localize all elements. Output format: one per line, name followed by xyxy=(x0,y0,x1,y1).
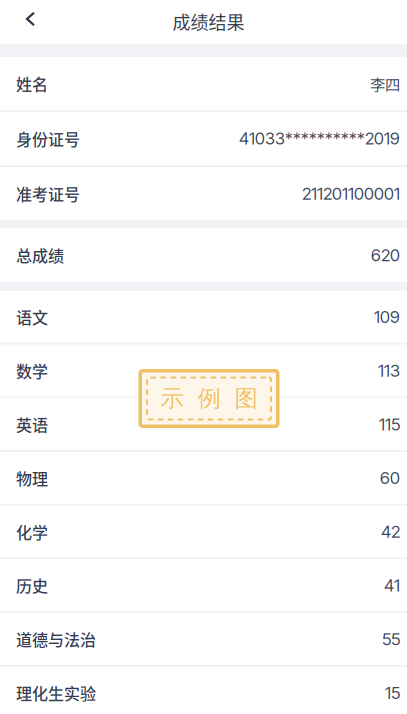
staticText: 化学 xyxy=(16,520,48,543)
staticText: 41 xyxy=(384,575,400,596)
button[interactable]: 数学 xyxy=(0,345,407,396)
button[interactable]: 英语 xyxy=(0,398,407,450)
staticText: 113 xyxy=(378,360,400,381)
staticText: 成绩结果 xyxy=(172,8,244,35)
button[interactable]: 道德与法治 xyxy=(0,613,407,665)
staticText: 60 xyxy=(380,468,400,488)
staticText: 数学 xyxy=(16,359,48,382)
button[interactable]: Back xyxy=(0,0,49,44)
staticText: 道德与法治 xyxy=(16,627,96,651)
staticText: 115 xyxy=(379,414,400,434)
button[interactable]: 历史 xyxy=(0,559,407,611)
staticText: 李四 xyxy=(370,72,400,95)
staticText: 211201100001 xyxy=(302,183,400,204)
staticText: 109 xyxy=(374,307,400,327)
button[interactable]: 总成绩 xyxy=(0,228,407,282)
button[interactable]: 姓名 xyxy=(0,57,407,110)
button[interactable]: 准考证号 xyxy=(0,167,407,220)
staticText: 42 xyxy=(381,521,400,542)
button[interactable]: 身份证号 xyxy=(0,112,407,165)
staticText: 41033**********2019 xyxy=(239,128,400,149)
button[interactable]: 理化生实验 xyxy=(0,667,407,714)
staticText: 55 xyxy=(382,629,400,649)
staticText: 物理 xyxy=(16,466,48,490)
staticText: 15 xyxy=(385,682,400,703)
staticText: 英语 xyxy=(16,413,48,436)
staticText: 身份证号 xyxy=(16,127,80,150)
staticText: 准考证号 xyxy=(16,182,80,205)
button[interactable]: 化学 xyxy=(0,506,407,557)
staticText: 语文 xyxy=(16,305,48,328)
staticText: 示 例 图 xyxy=(160,384,257,413)
button[interactable]: 语文 xyxy=(0,291,407,343)
staticText: 620 xyxy=(371,245,400,265)
staticText: 总成绩 xyxy=(16,243,64,267)
staticText: 理化生实验 xyxy=(16,681,96,704)
button[interactable]: 物理 xyxy=(0,452,407,504)
staticText: 历史 xyxy=(16,574,48,597)
staticText: 姓名 xyxy=(16,72,48,95)
